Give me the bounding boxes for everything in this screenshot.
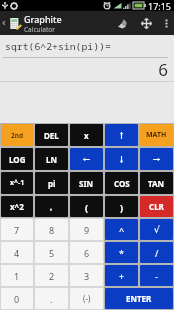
- button[interactable]: TAN: [140, 172, 173, 194]
- button[interactable]: 8: [35, 219, 68, 240]
- button[interactable]: [105, 148, 138, 170]
- button[interactable]: [70, 148, 103, 170]
- staticText: 17:15: [148, 0, 172, 11]
- button[interactable]: x^2: [1, 196, 33, 217]
- button[interactable]: x^-1: [1, 172, 33, 194]
- staticText: 5: [49, 247, 55, 259]
- staticText: 2nd: [11, 131, 24, 140]
- button[interactable]: Erase: [110, 11, 134, 35]
- button[interactable]: pi: [35, 172, 68, 194]
- button[interactable]: COS: [105, 172, 138, 194]
- button[interactable]: CLR: [140, 196, 173, 217]
- staticText: 7: [14, 224, 20, 236]
- button[interactable]: More options: [158, 11, 174, 35]
- staticText: ): [120, 201, 124, 213]
- staticText: 1: [14, 270, 20, 282]
- button[interactable]: (: [70, 196, 103, 217]
- button[interactable]: /: [140, 242, 173, 263]
- button[interactable]: ^: [105, 219, 138, 240]
- staticText: *: [119, 247, 124, 259]
- staticText: 9: [84, 224, 90, 236]
- button[interactable]: 1: [1, 265, 33, 286]
- button[interactable]: 5: [35, 242, 68, 263]
- button[interactable]: ENTER: [105, 288, 173, 309]
- staticText: 2: [49, 270, 55, 282]
- button[interactable]: SIN: [70, 172, 103, 194]
- button[interactable]: LOG: [1, 148, 33, 170]
- staticText: SIN: [79, 178, 94, 189]
- staticText: MATH: [146, 130, 167, 140]
- staticText: CLR: [149, 201, 164, 212]
- staticText: (-): [83, 293, 91, 304]
- button[interactable]: √: [140, 219, 173, 240]
- button[interactable]: x: [70, 124, 103, 146]
- button[interactable]: -: [140, 265, 173, 286]
- staticText: ^: [119, 224, 125, 236]
- staticText: √: [154, 225, 160, 235]
- staticText: LN: [46, 154, 57, 165]
- button[interactable]: .: [35, 288, 68, 309]
- button[interactable]: 0: [1, 288, 33, 309]
- staticText: +: [119, 270, 125, 282]
- staticText: x^2: [10, 201, 24, 212]
- button[interactable]: DEL: [35, 124, 68, 146]
- button[interactable]: (-): [70, 288, 103, 309]
- staticText: ,: [50, 201, 53, 212]
- staticText: ENTER: [126, 293, 152, 304]
- button[interactable]: [105, 124, 138, 146]
- staticText: 0: [14, 293, 20, 305]
- staticText: 3: [84, 270, 90, 282]
- staticText: 4: [14, 247, 20, 259]
- button[interactable]: *: [105, 242, 138, 263]
- button[interactable]: LN: [35, 148, 68, 170]
- staticText: 6: [0, 58, 168, 81]
- button[interactable]: ): [105, 196, 138, 217]
- staticText: x: [84, 130, 89, 141]
- button[interactable]: 2nd: [1, 124, 33, 146]
- button[interactable]: 6: [70, 242, 103, 263]
- button[interactable]: [140, 148, 173, 170]
- button[interactable]: 4: [1, 242, 33, 263]
- button[interactable]: 7: [1, 219, 33, 240]
- staticText: (: [85, 201, 89, 213]
- staticText: sqrt(6^2+sin(pi))=: [5, 40, 111, 53]
- button[interactable]: MATH: [140, 124, 173, 146]
- staticText: Graphite: [24, 13, 62, 25]
- button[interactable]: Move: [134, 11, 158, 35]
- staticText: -: [155, 270, 158, 282]
- staticText: .: [50, 293, 53, 305]
- staticText: DEL: [44, 130, 59, 141]
- staticText: 6: [84, 247, 90, 259]
- staticText: pi: [48, 178, 56, 189]
- button[interactable]: ,: [35, 196, 68, 217]
- button[interactable]: 9: [70, 219, 103, 240]
- staticText: x^-1: [10, 178, 25, 188]
- staticText: 8: [49, 224, 55, 236]
- staticText: LOG: [9, 154, 26, 165]
- staticText: TAN: [148, 178, 165, 189]
- staticText: COS: [114, 178, 130, 189]
- staticText: /: [155, 247, 159, 259]
- staticText: Calculator: [24, 25, 55, 34]
- button[interactable]: +: [105, 265, 138, 286]
- button[interactable]: 3: [70, 265, 103, 286]
- button[interactable]: 2: [35, 265, 68, 286]
- button[interactable]: Back: [0, 11, 8, 35]
